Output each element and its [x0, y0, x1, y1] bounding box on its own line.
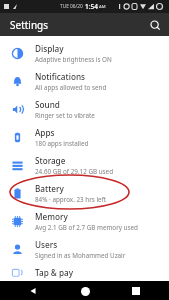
staticText: 1:54 [85, 2, 98, 11]
staticText: Memory [35, 211, 68, 222]
staticText: 84% · approx. 23 hrs left [35, 195, 107, 204]
button[interactable]: Tap & pay [0, 263, 169, 281]
button[interactable]: Display [0, 39, 169, 67]
staticText: All apps allowed to send [35, 83, 107, 92]
staticText: Settings [10, 18, 49, 32]
staticText: 180 apps installed [35, 139, 89, 148]
staticText: TUE 06/20 [60, 3, 83, 10]
staticText: Signed in as Mohammed Uzair [35, 251, 126, 260]
button[interactable]: Back [24, 282, 42, 300]
staticText: Notifications [35, 71, 85, 82]
staticText: Battery [35, 183, 64, 194]
staticText: Display [35, 43, 64, 54]
staticText: AM [99, 4, 106, 10]
staticText: Avg 2.1 GB of 2.7 GB memory used [35, 223, 138, 232]
button[interactable]: Recents [127, 282, 145, 300]
staticText: Adaptive brightness is ON [35, 55, 112, 64]
staticText: 24.60 GB of 29.12 GB used [35, 167, 114, 176]
button[interactable]: Users [0, 235, 169, 263]
button[interactable]: Home [76, 282, 94, 300]
staticText: Tap & pay [35, 267, 74, 278]
button[interactable]: Notifications [0, 67, 169, 95]
staticText: Sound [35, 99, 60, 110]
staticText: Users [35, 239, 58, 250]
button[interactable]: Storage [0, 151, 169, 179]
button[interactable]: Battery [0, 179, 169, 207]
button[interactable]: Search [145, 15, 165, 35]
staticText: Storage [35, 155, 66, 166]
staticText: Ringer set to vibrate [35, 111, 95, 120]
staticText: Apps [35, 127, 55, 138]
button[interactable]: Sound [0, 95, 169, 123]
button[interactable]: Memory [0, 207, 169, 235]
button[interactable]: Apps [0, 123, 169, 151]
